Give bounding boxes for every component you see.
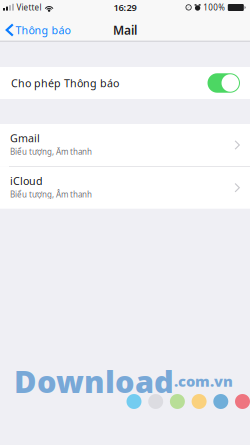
staticText: Biểu tượng, Âm thanh xyxy=(10,146,92,157)
staticText: Thông báo xyxy=(15,23,70,37)
button[interactable]: Cho phép Thông báo xyxy=(207,73,240,93)
staticText: Cho phép Thông báo xyxy=(11,76,119,90)
button[interactable]: iCloud xyxy=(0,167,250,209)
button[interactable]: Gmail xyxy=(0,124,250,166)
staticText: Viettel xyxy=(16,2,41,13)
staticText: iCloud xyxy=(10,174,43,188)
staticText: Mail xyxy=(113,22,137,38)
staticText: Gmail xyxy=(10,131,40,145)
staticText: 16:29 xyxy=(113,1,136,14)
staticText: Download xyxy=(14,361,174,401)
staticText: Biểu tượng, Âm thanh xyxy=(10,189,92,200)
staticText: .com.vn xyxy=(174,371,233,391)
button[interactable]: Thông báo xyxy=(0,19,76,41)
staticText: 100% xyxy=(203,2,225,13)
